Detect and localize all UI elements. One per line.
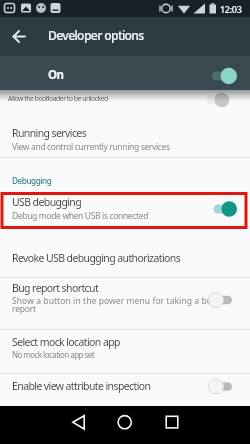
staticText: View and control currently running servi…	[12, 141, 170, 153]
button[interactable]	[150, 406, 192, 444]
staticText: USB debugging	[12, 195, 82, 209]
staticText: On	[48, 67, 64, 83]
staticText: Running services	[12, 126, 87, 140]
button[interactable]	[0, 330, 250, 373]
button[interactable]	[0, 56, 250, 90]
staticText: Debugging	[12, 175, 52, 186]
button[interactable]	[0, 374, 250, 405]
staticText: report	[12, 303, 36, 315]
staticText: Enable view attribute inspection	[12, 379, 151, 393]
staticText: Allow the bootloader to be unlocked	[8, 94, 108, 104]
button[interactable]	[58, 406, 100, 444]
button[interactable]	[0, 104, 250, 158]
button[interactable]	[0, 195, 250, 229]
button[interactable]	[0, 17, 44, 56]
staticText: Show a button in the power menu for taki…	[12, 295, 218, 307]
staticText: Debug mode when USB is connected	[12, 210, 149, 222]
button[interactable]	[0, 240, 250, 278]
button[interactable]	[0, 278, 250, 329]
staticText: Select mock location app	[12, 335, 120, 349]
staticText: Developer options	[48, 27, 144, 44]
staticText: No mock location app set	[12, 349, 94, 360]
staticText: Revoke USB debugging authorizations	[12, 251, 181, 265]
button[interactable]	[104, 406, 146, 444]
staticText: 12:03	[220, 3, 242, 15]
staticText: Bug report shortcut	[12, 281, 99, 295]
